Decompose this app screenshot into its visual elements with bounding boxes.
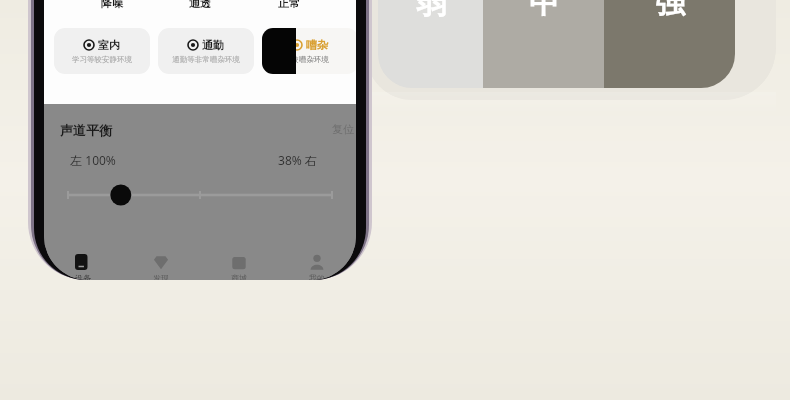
staticText: 商城 xyxy=(231,273,247,280)
button[interactable]: 中 xyxy=(483,0,604,88)
staticText: 弱 xyxy=(416,0,446,22)
button[interactable]: 复位 xyxy=(330,120,356,138)
staticText: 复位 xyxy=(332,122,354,136)
staticText: 左 100% xyxy=(70,152,116,168)
button[interactable]: 室内 xyxy=(54,28,150,74)
button[interactable]: 正常 xyxy=(268,0,310,12)
button[interactable]: 商城 xyxy=(200,254,278,280)
staticText: 中 xyxy=(529,0,559,22)
staticText: 较嘈杂环境 xyxy=(291,55,329,64)
staticText: 强 xyxy=(655,0,685,22)
button[interactable]: 通勤 xyxy=(158,28,254,74)
staticText: 通勤 xyxy=(202,38,224,52)
button[interactable]: 降噪 xyxy=(91,0,133,12)
button[interactable] xyxy=(62,182,338,208)
staticText: 室内 xyxy=(98,38,120,52)
button[interactable]: 嘈杂 xyxy=(262,28,356,74)
staticText: 声道平衡 xyxy=(60,122,112,138)
staticText: 降噪 xyxy=(101,0,123,10)
button[interactable]: 强 xyxy=(604,0,735,88)
staticText: 设备 xyxy=(75,273,91,280)
button[interactable]: 弱 xyxy=(378,0,483,88)
staticText: 嘈杂 xyxy=(306,38,328,52)
staticText: 通勤等非常嘈杂环境 xyxy=(172,55,240,64)
button[interactable]: 通透 xyxy=(179,0,221,12)
staticText: 学习等较安静环境 xyxy=(72,55,132,64)
staticText: 我的 xyxy=(309,273,325,280)
button[interactable]: 设备 xyxy=(44,254,122,280)
button[interactable]: 我的 xyxy=(278,254,356,280)
staticText: 通透 xyxy=(189,0,211,10)
button[interactable]: 发现 xyxy=(122,254,200,280)
staticText: 38% 右 xyxy=(278,152,317,168)
staticText: 发现 xyxy=(153,273,169,280)
staticText: 正常 xyxy=(278,0,300,10)
